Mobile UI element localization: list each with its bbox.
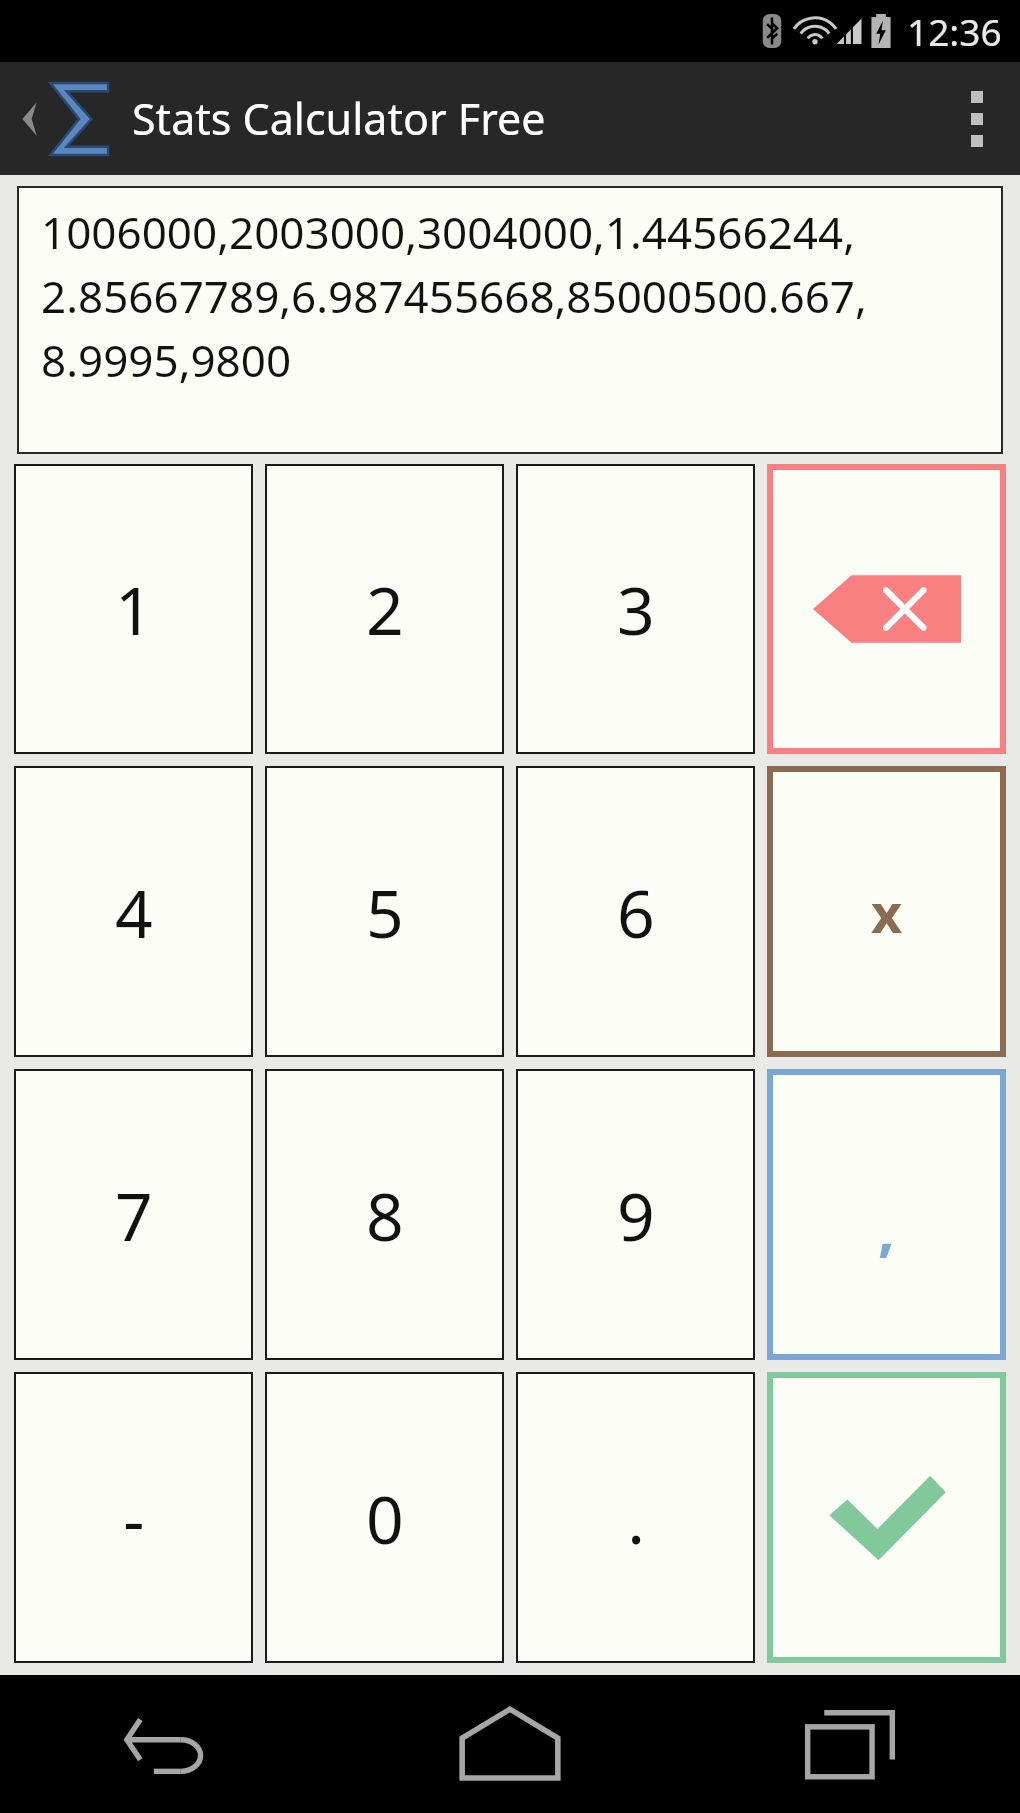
button[interactable]: , xyxy=(767,1069,1006,1360)
button[interactable]: More options xyxy=(934,62,1020,175)
staticText: 4 xyxy=(115,867,153,957)
button[interactable]: 6 xyxy=(516,766,755,1057)
button[interactable]: Home xyxy=(340,1675,680,1813)
staticText: 5 xyxy=(366,867,404,957)
button[interactable]: . xyxy=(516,1372,755,1663)
button[interactable]: 3 xyxy=(516,464,755,754)
button[interactable]: Submit xyxy=(767,1372,1006,1663)
button[interactable]: 2 xyxy=(265,464,504,754)
button[interactable]: Delete xyxy=(767,464,1006,754)
button[interactable]: x xyxy=(767,766,1006,1057)
staticText: 3 xyxy=(617,564,655,654)
staticText: 9 xyxy=(617,1170,655,1260)
staticText: 8 xyxy=(366,1170,404,1260)
staticText: , xyxy=(878,1189,895,1268)
button[interactable]: 7 xyxy=(14,1069,253,1360)
staticText: 12:36 xyxy=(907,6,1002,56)
button[interactable]: 0 xyxy=(265,1372,504,1663)
button[interactable]: 5 xyxy=(265,766,504,1057)
button[interactable]: Back xyxy=(0,1675,340,1813)
button[interactable]: 1006000,2003000,3004000,1.44566244, 2.85… xyxy=(17,186,1003,454)
staticText: 2 xyxy=(366,564,404,654)
button[interactable]: - xyxy=(14,1372,253,1663)
button[interactable]: 8 xyxy=(265,1069,504,1360)
button[interactable]: Recent apps xyxy=(680,1675,1020,1813)
staticText: 1 xyxy=(115,564,153,654)
staticText: . xyxy=(627,1473,645,1563)
staticText: Stats Calculator Free xyxy=(132,89,546,148)
button[interactable]: 4 xyxy=(14,766,253,1057)
button[interactable]: 9 xyxy=(516,1069,755,1360)
staticText: - xyxy=(123,1473,145,1563)
button[interactable]: 1 xyxy=(14,464,253,754)
staticText: 6 xyxy=(617,867,655,957)
staticText: x xyxy=(871,875,903,949)
staticText: 7 xyxy=(115,1170,153,1260)
staticText: 0 xyxy=(366,1473,404,1563)
button[interactable]: Up xyxy=(12,73,116,165)
staticText: 1006000,2003000,3004000,1.44566244, 2.85… xyxy=(41,202,867,390)
